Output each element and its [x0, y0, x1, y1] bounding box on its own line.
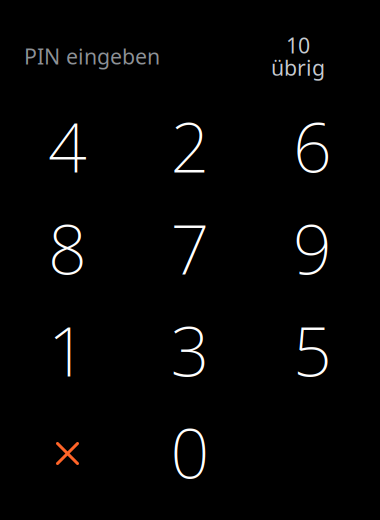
button[interactable]: 0 [129, 401, 251, 503]
staticText: übrig [271, 53, 325, 82]
button[interactable]: 6 [251, 95, 374, 197]
staticText: 5 [293, 305, 332, 395]
staticText: 8 [48, 203, 87, 293]
staticText: 9 [293, 203, 332, 293]
button[interactable]: 8 [6, 197, 129, 299]
button[interactable]: 2 [129, 95, 251, 197]
staticText: 7 [170, 203, 209, 293]
staticText: 0 [170, 407, 209, 497]
button[interactable]: Löschen [6, 401, 129, 503]
button[interactable]: 5 [251, 299, 374, 401]
staticText: 1 [48, 305, 87, 395]
button[interactable]: 3 [129, 299, 251, 401]
button[interactable]: 9 [251, 197, 374, 299]
staticText: 6 [293, 101, 332, 191]
staticText: 10 [286, 31, 310, 59]
staticText: 3 [170, 305, 209, 395]
staticText: 4 [48, 101, 87, 191]
button[interactable]: 7 [129, 197, 251, 299]
staticText: 2 [170, 101, 209, 191]
button[interactable]: 4 [6, 95, 129, 197]
button[interactable]: 1 [6, 299, 129, 401]
staticText: PIN eingeben [24, 42, 160, 70]
